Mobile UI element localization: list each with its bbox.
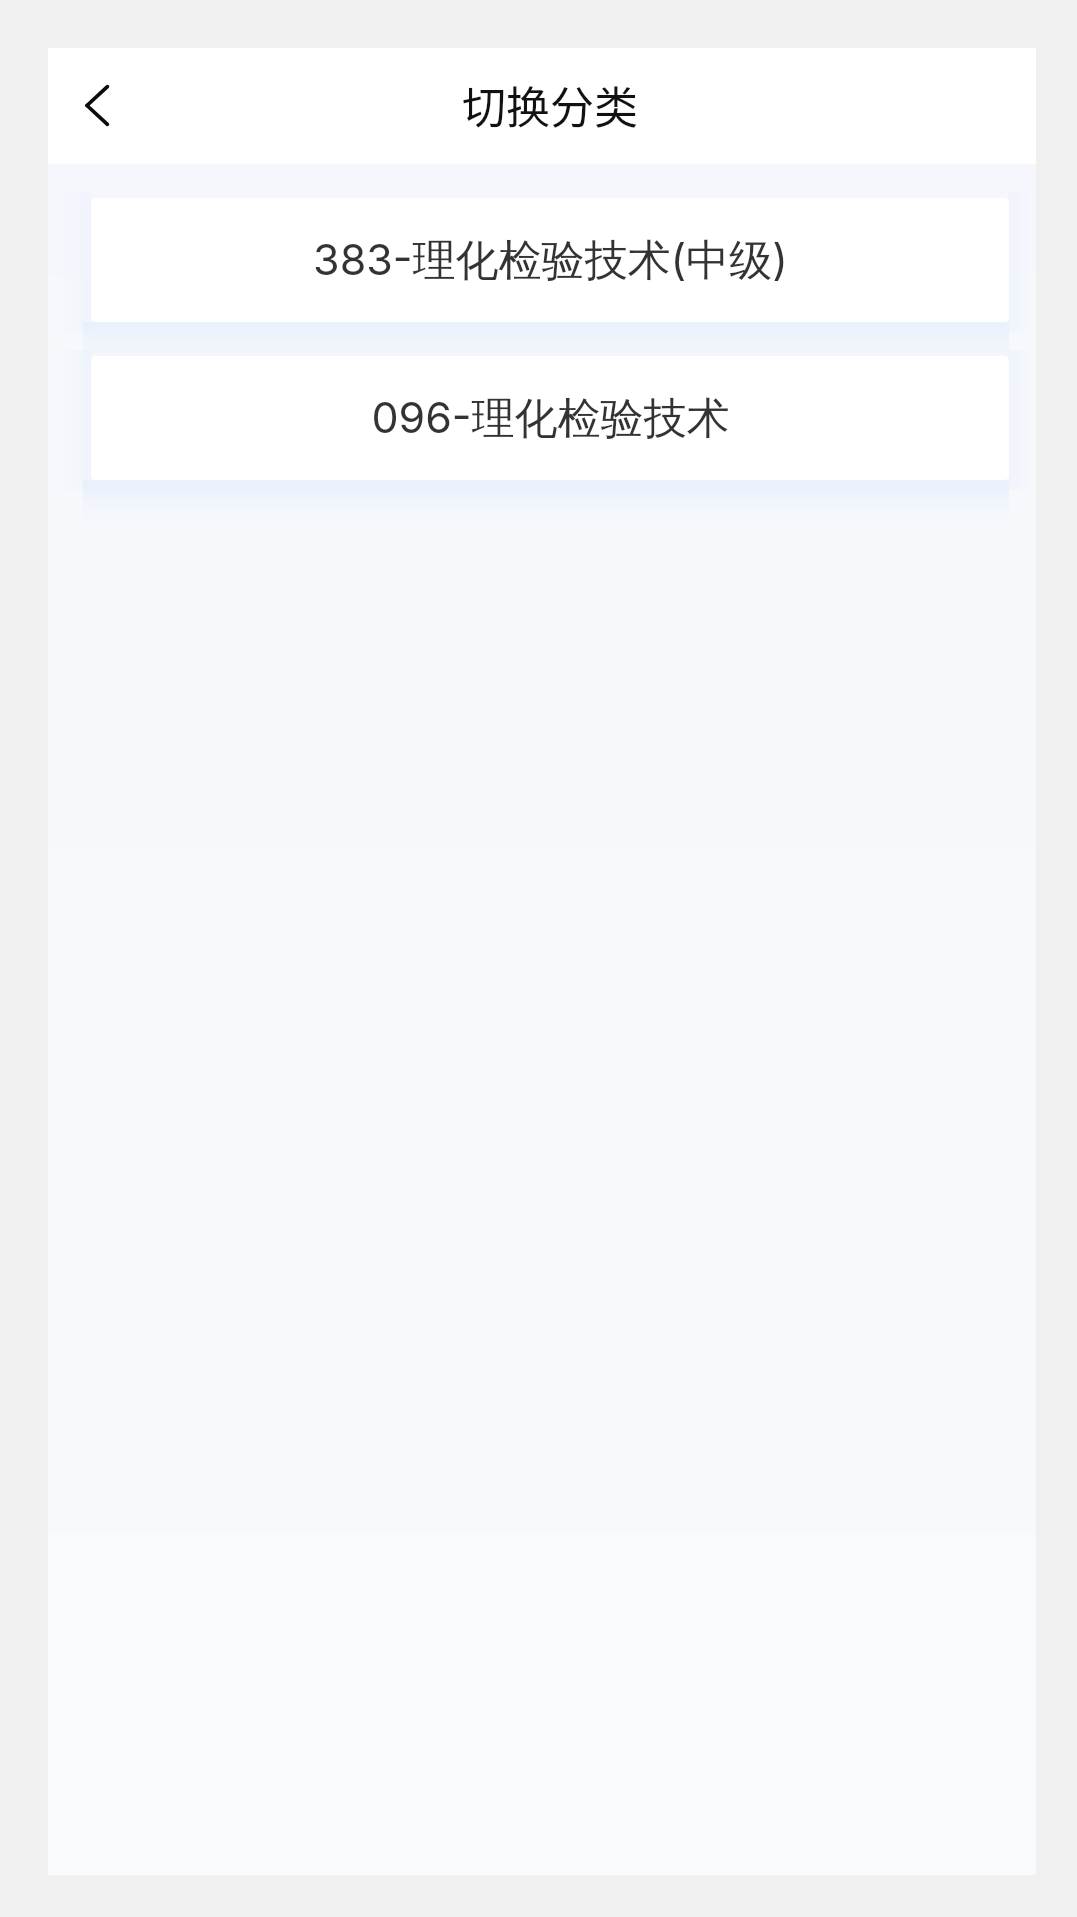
staticText: 096-理化检验技术 xyxy=(371,391,730,445)
button[interactable]: 096-理化检验技术 xyxy=(91,356,1009,480)
staticText: 切换分类 xyxy=(462,73,638,137)
staticText: 383-理化检验技术(中级) xyxy=(313,233,788,287)
button[interactable]: 383-理化检验技术(中级) xyxy=(91,198,1009,322)
button[interactable]: Back xyxy=(59,58,155,154)
